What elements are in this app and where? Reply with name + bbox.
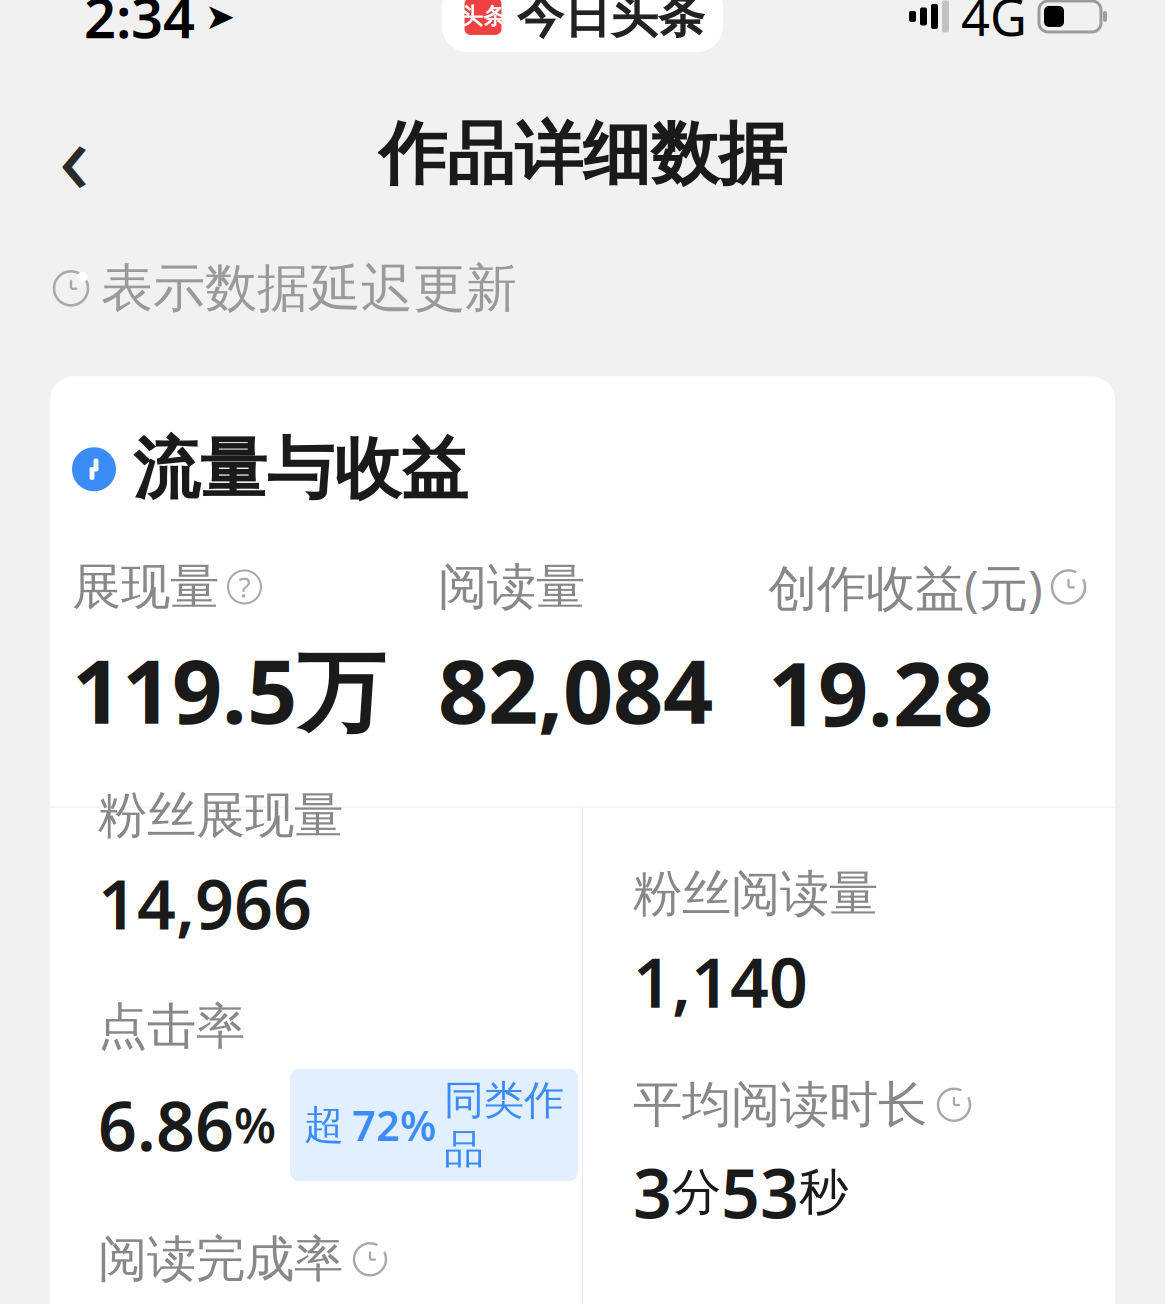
staticText: 超 [304,1100,344,1149]
staticText: 展现量 [72,557,219,617]
staticText: % [234,1093,276,1157]
staticText: 平均阅读时长 [633,1074,927,1135]
staticText: 阅读完成率 [98,1229,343,1290]
staticText: 粉丝展现量 [98,785,343,846]
staticText: 分 [672,1162,721,1222]
button[interactable]: 返回 [26,106,122,202]
staticText: 6.86 [98,1080,234,1170]
staticText: 2:34 [84,0,195,54]
staticText: 72% [352,1097,436,1152]
staticText: 同类作品 [444,1076,564,1174]
staticText: 头条 [460,2,506,30]
staticText: 19.28 [768,634,993,751]
staticText: 粉丝阅读量 [633,864,878,924]
staticText: ? [238,568,250,606]
staticText: 作品详细数据 [378,113,786,196]
staticText: 14,966 [98,858,312,948]
staticText: 今日头条 [517,0,705,45]
staticText: 创作收益(元) [768,554,1043,620]
staticText: ‹ [58,87,89,222]
staticText: 表示数据延迟更新 [101,256,517,320]
staticText: 82,084 [438,631,713,748]
staticText: 119.5万 [72,631,385,748]
staticText: 3 [633,1147,672,1237]
staticText: ➤ [205,0,235,37]
staticText: 流量与收益 [133,428,468,510]
staticText: 4G [961,0,1027,50]
staticText: 秒 [799,1162,848,1222]
staticText: 53 [721,1147,799,1237]
staticText: 点击率 [98,996,245,1057]
staticText: 阅读量 [438,557,585,617]
staticText: 1,140 [633,936,808,1026]
